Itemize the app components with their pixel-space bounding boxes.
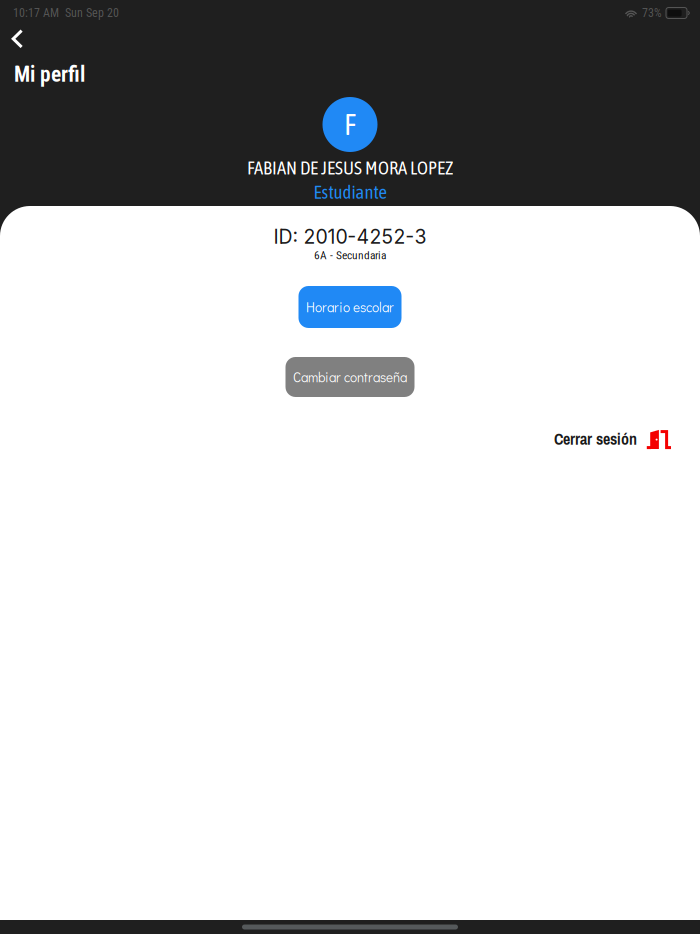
staticText: Cambiar contraseña	[293, 368, 407, 386]
staticText: ID: 2010-4252-3	[273, 225, 426, 249]
staticText: Mi perfil	[14, 62, 85, 87]
staticText: Sun Sep 20	[65, 6, 119, 20]
button[interactable]: Cambiar contraseña	[285, 357, 414, 397]
staticText: FABIAN DE JESUS MORA LOPEZ	[247, 157, 453, 178]
staticText: F	[344, 108, 356, 141]
button[interactable]: Back	[0, 24, 36, 54]
button[interactable]: Horario escolar	[298, 286, 401, 328]
button[interactable]: Cerrar sesión	[548, 424, 678, 454]
staticText: 6A - Secundaria	[314, 249, 386, 262]
staticText: Horario escolar	[306, 298, 394, 316]
staticText: 73%	[642, 6, 662, 20]
staticText: Cerrar sesión	[554, 428, 637, 450]
staticText: 10:17 AM	[13, 6, 59, 20]
staticText: Estudiante	[313, 181, 386, 203]
